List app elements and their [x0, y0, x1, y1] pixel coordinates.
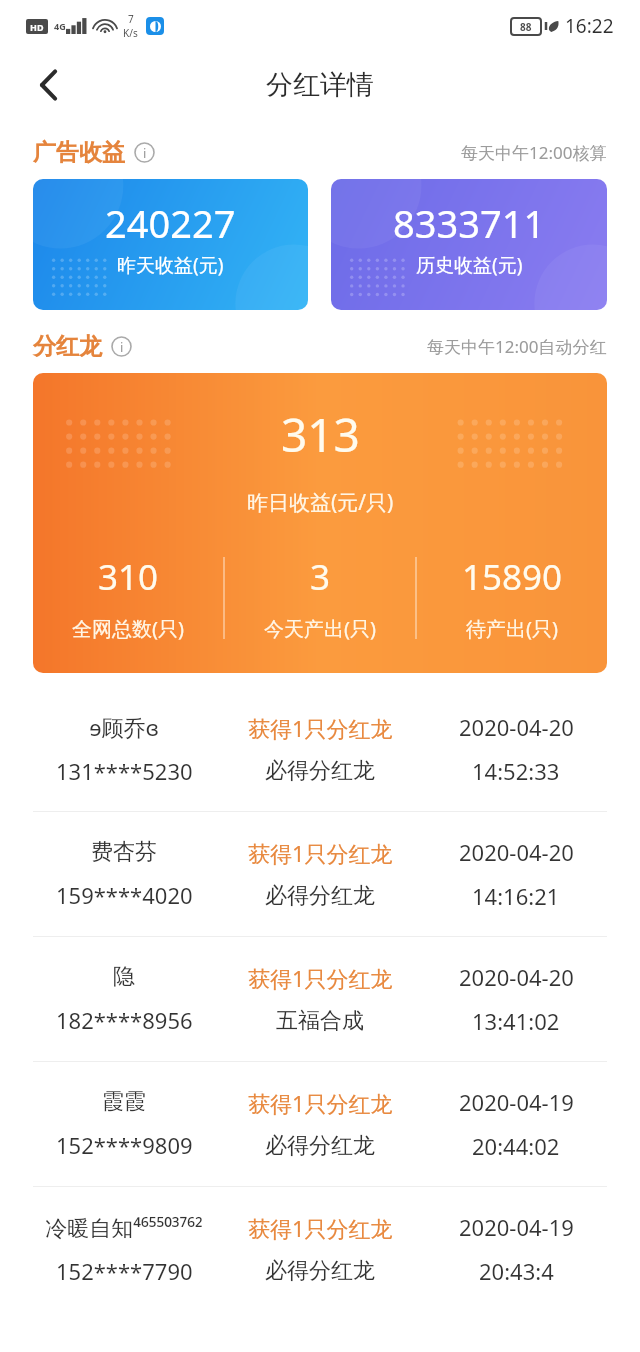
staticText: HD: [30, 21, 44, 33]
button[interactable]: Info: [134, 142, 155, 163]
button[interactable]: Back: [22, 58, 76, 112]
staticText: 历史收益(元): [416, 252, 523, 278]
staticText: 必得分红龙: [265, 1257, 375, 1285]
staticText: K/s: [123, 26, 138, 40]
button[interactable]: ɘ顾乔ɞ: [0, 687, 640, 811]
staticText: 2020-04-20: [459, 712, 574, 742]
staticText: i: [143, 144, 147, 162]
button[interactable]: 240227: [33, 179, 308, 310]
staticText: 冷暖自知⁴⁶⁵⁵⁰³⁷⁶²: [45, 1212, 203, 1242]
staticText: 2020-04-19: [459, 1212, 574, 1242]
staticText: 159****4020: [56, 880, 193, 910]
staticText: 昨天收益(元): [117, 252, 224, 278]
button[interactable]: 霞霞: [0, 1062, 640, 1186]
staticText: 待产出(只): [466, 615, 558, 642]
staticText: 152****9809: [56, 1130, 193, 1160]
staticText: 15890: [462, 553, 563, 601]
button[interactable]: Info: [111, 336, 132, 357]
staticText: 2020-04-19: [459, 1087, 574, 1117]
staticText: 313: [281, 403, 360, 466]
staticText: 88: [520, 20, 532, 34]
staticText: 获得1只分红龙: [248, 838, 393, 868]
staticText: 8333711: [393, 197, 546, 249]
staticText: 14:16:21: [472, 881, 560, 911]
staticText: 131****5230: [56, 756, 193, 786]
staticText: 每天中午12:00核算: [461, 141, 607, 164]
staticText: 昨日收益(元/只): [247, 488, 394, 517]
button[interactable]: 费杏芬: [0, 812, 640, 936]
staticText: ɘ顾乔ɞ: [89, 712, 159, 742]
staticText: 240227: [105, 197, 236, 249]
button[interactable]: 冷暖自知⁴⁶⁵⁵⁰³⁷⁶²: [0, 1187, 640, 1311]
staticText: 4G: [54, 20, 66, 32]
staticText: 必得分红龙: [265, 1132, 375, 1160]
staticText: 14:52:33: [472, 756, 560, 786]
staticText: 获得1只分红龙: [248, 1088, 393, 1118]
staticText: 隐: [113, 963, 135, 991]
staticText: i: [120, 338, 124, 356]
staticText: 五福合成: [276, 1007, 364, 1035]
staticText: 广告收益: [33, 138, 125, 167]
staticText: 13:41:02: [472, 1006, 560, 1036]
staticText: 必得分红龙: [265, 882, 375, 910]
staticText: 2020-04-20: [459, 962, 574, 992]
button[interactable]: 隐: [0, 937, 640, 1061]
staticText: 16:22: [565, 13, 614, 39]
staticText: 182****8956: [56, 1005, 193, 1035]
button[interactable]: 313: [33, 373, 607, 673]
staticText: 310: [98, 553, 159, 601]
staticText: 分红详情: [266, 68, 374, 102]
staticText: 7: [128, 12, 134, 26]
staticText: 获得1只分红龙: [248, 1213, 393, 1243]
button[interactable]: 8333711: [331, 179, 607, 310]
staticText: 2020-04-20: [459, 837, 574, 867]
staticText: 20:44:02: [472, 1131, 560, 1161]
staticText: 获得1只分红龙: [248, 713, 393, 743]
staticText: 费杏芬: [91, 838, 157, 866]
staticText: 3: [310, 553, 331, 601]
staticText: 分红龙: [33, 332, 102, 361]
staticText: 每天中午12:00自动分红: [427, 335, 607, 358]
staticText: 获得1只分红龙: [248, 963, 393, 993]
staticText: 今天产出(只): [264, 615, 376, 642]
staticText: 152****7790: [56, 1256, 193, 1286]
staticText: 全网总数(只): [72, 615, 184, 642]
staticText: 20:43:4: [479, 1256, 554, 1286]
staticText: 必得分红龙: [265, 757, 375, 785]
staticText: 霞霞: [102, 1088, 146, 1116]
